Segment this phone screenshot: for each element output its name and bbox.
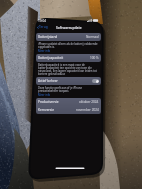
staticText: 100 %: [90, 56, 99, 60]
button[interactable]: Meer info: [38, 93, 51, 97]
staticText: 19:04: [38, 19, 46, 23]
staticText: Softwareupdate: [56, 25, 82, 29]
staticText: Deze functie geeft aan of je iPhone pres…: [38, 86, 99, 93]
staticText: iPhone updatet alleen als de batterij vo…: [38, 42, 99, 49]
staticText: Actief beheer: [38, 79, 58, 83]
button[interactable]: Batterijstand: [36, 33, 101, 41]
button[interactable]: Actief beheer: [36, 77, 101, 85]
button[interactable]: Meer info: [38, 49, 51, 53]
button[interactable]: Productversie: [36, 98, 101, 106]
button[interactable]: Kernversie: [36, 106, 101, 114]
other: Phone on carpet showing a settings scree…: [0, 0, 142, 189]
staticText: Batterijcapaciteit: [38, 56, 64, 60]
staticText: Batterijstand: [38, 35, 58, 39]
staticText: oktober 2024: [79, 100, 99, 104]
staticText: Terug: [39, 25, 48, 29]
staticText: Productversie: [38, 100, 59, 104]
staticText: Kernversie: [38, 108, 54, 112]
button[interactable]: Terug: [36, 24, 49, 30]
staticText: Batterijcapaciteit is een maat voor de b…: [38, 63, 99, 76]
button[interactable]: Toggle: [92, 79, 99, 83]
staticText: Normaal: [86, 35, 99, 39]
staticText: november 2024: [76, 108, 99, 112]
button[interactable]: Batterijcapaciteit: [36, 54, 101, 62]
